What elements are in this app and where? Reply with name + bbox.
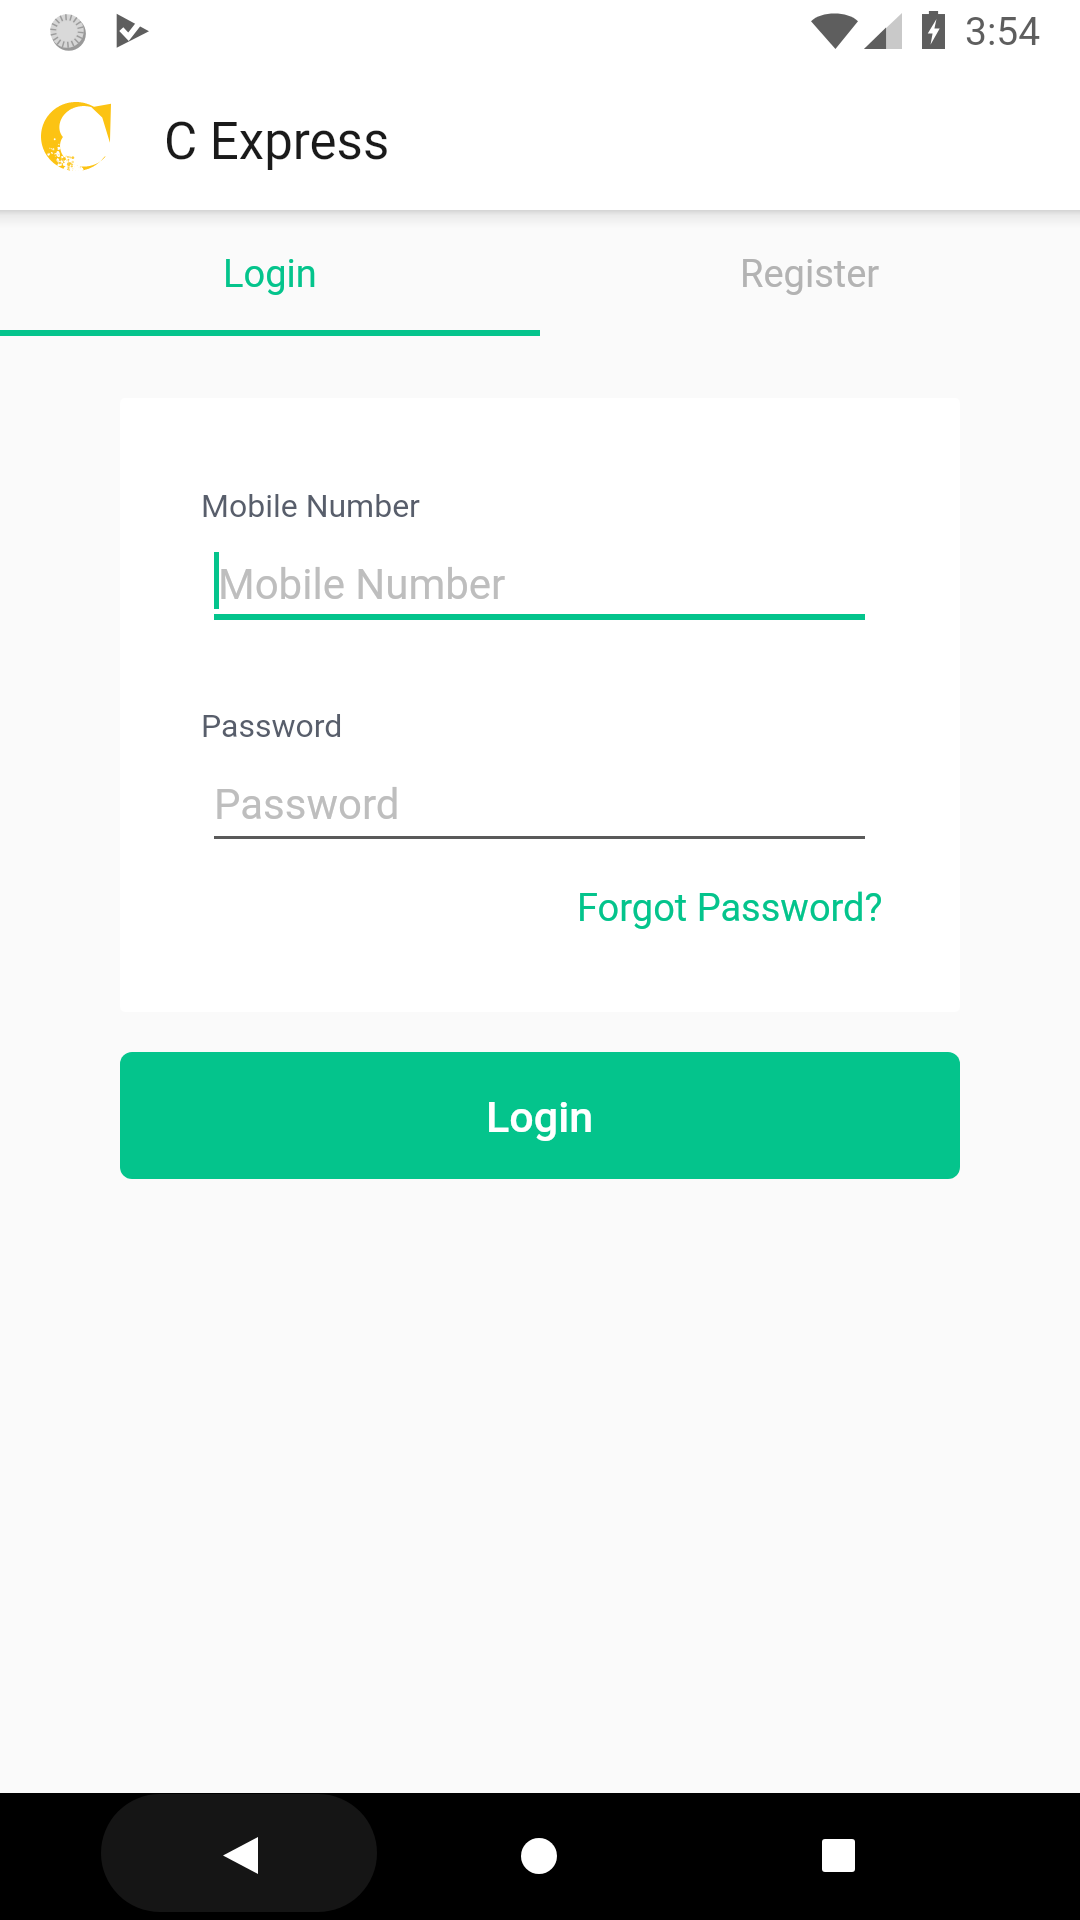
button[interactable]: Login (0, 210, 540, 336)
staticText: Password (201, 707, 343, 745)
staticText: Password (214, 780, 400, 829)
button[interactable]: Register (540, 210, 1080, 336)
button[interactable]: Recent apps (773, 1793, 903, 1920)
staticText: C Express (164, 112, 390, 172)
staticText: Login (486, 1092, 594, 1142)
staticText: 3:54 (965, 9, 1041, 55)
staticText: Mobile Number (218, 560, 506, 609)
staticText: Mobile Number (201, 487, 420, 525)
button[interactable]: Password (214, 768, 865, 838)
button[interactable]: Mobile Number (214, 548, 865, 620)
button[interactable]: Back (175, 1793, 305, 1920)
button[interactable]: Login (120, 1052, 960, 1179)
button[interactable]: Forgot Password? (577, 886, 883, 931)
staticText: Register (740, 252, 880, 297)
button[interactable]: Home (474, 1793, 604, 1920)
staticText: Login (223, 252, 317, 297)
